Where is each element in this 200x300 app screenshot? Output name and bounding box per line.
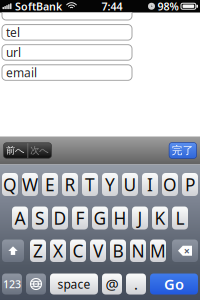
staticText: P — [185, 173, 195, 196]
staticText: @ — [105, 274, 118, 294]
button[interactable]: Shift — [2, 239, 24, 262]
button[interactable]: @ — [102, 273, 122, 294]
staticText: Y — [105, 173, 115, 196]
staticText: 前へ — [6, 145, 25, 156]
button[interactable]: J — [132, 206, 148, 229]
staticText: E — [45, 173, 55, 196]
staticText: K — [154, 206, 165, 229]
staticText: . — [134, 274, 138, 294]
staticText: url — [6, 44, 21, 60]
button[interactable]: . — [126, 273, 146, 294]
staticText: M — [150, 239, 166, 262]
staticText: R — [64, 173, 75, 196]
staticText: Q — [3, 173, 17, 196]
button[interactable]: K — [152, 206, 168, 229]
button[interactable]: B — [110, 239, 126, 262]
button[interactable]: Delete — [172, 239, 198, 262]
staticText: I — [147, 173, 153, 196]
staticText: space — [57, 276, 90, 292]
staticText: Go — [164, 274, 184, 294]
button[interactable]: H — [112, 206, 128, 229]
button[interactable]: 次へ — [28, 143, 51, 158]
button[interactable]: V — [90, 239, 106, 262]
staticText: N — [131, 239, 144, 262]
staticText: W — [22, 173, 38, 196]
button[interactable]: S — [32, 206, 48, 229]
staticText: F — [75, 206, 84, 229]
staticText: 次へ — [30, 145, 49, 156]
button[interactable]: L — [172, 206, 188, 229]
staticText: T — [85, 173, 95, 196]
staticText: S — [35, 206, 45, 229]
button[interactable]: Go — [150, 273, 198, 294]
button[interactable]: F — [72, 206, 88, 229]
button[interactable]: G — [92, 206, 108, 229]
button[interactable]: X — [50, 239, 66, 262]
button[interactable]: P — [182, 173, 198, 196]
button[interactable]: C — [70, 239, 86, 262]
staticText: 7:44 — [101, 0, 122, 13]
staticText: J — [137, 206, 142, 229]
button[interactable]: R — [62, 173, 78, 196]
button[interactable]: Y — [102, 173, 118, 196]
staticText: D — [53, 206, 66, 229]
staticText: C — [72, 239, 83, 262]
staticText: V — [93, 239, 103, 262]
staticText: 98% — [157, 0, 178, 13]
staticText: 完了 — [172, 144, 194, 157]
staticText: 123 — [3, 277, 21, 291]
button[interactable]: Change keyboard — [26, 273, 46, 294]
button[interactable]: W — [22, 173, 38, 196]
button[interactable]: E — [42, 173, 58, 196]
staticText: email — [6, 65, 37, 80]
button[interactable]: A — [12, 206, 28, 229]
button[interactable]: Z — [30, 239, 46, 262]
button[interactable]: Q — [2, 173, 18, 196]
button[interactable]: I — [142, 173, 158, 196]
button[interactable]: O — [162, 173, 178, 196]
staticText: Z — [33, 239, 43, 262]
button[interactable]: space — [50, 273, 98, 294]
button[interactable]: D — [52, 206, 68, 229]
button[interactable]: N — [130, 239, 146, 262]
button[interactable]: T — [82, 173, 98, 196]
staticText: L — [175, 206, 184, 229]
staticText: A — [14, 206, 25, 229]
staticText: SoftBank — [15, 0, 62, 13]
button[interactable]: 123 — [2, 273, 22, 294]
staticText: B — [112, 239, 123, 262]
staticText: X — [53, 239, 63, 262]
staticText: tel — [6, 24, 20, 40]
button[interactable]: 前へ — [3, 143, 27, 158]
staticText: H — [113, 206, 126, 229]
staticText: O — [163, 173, 177, 196]
button[interactable]: 完了 — [169, 142, 197, 158]
button[interactable]: U — [122, 173, 138, 196]
button[interactable]: M — [150, 239, 166, 262]
staticText: U — [123, 173, 136, 196]
staticText: × — [184, 244, 190, 258]
staticText: G — [93, 206, 106, 229]
